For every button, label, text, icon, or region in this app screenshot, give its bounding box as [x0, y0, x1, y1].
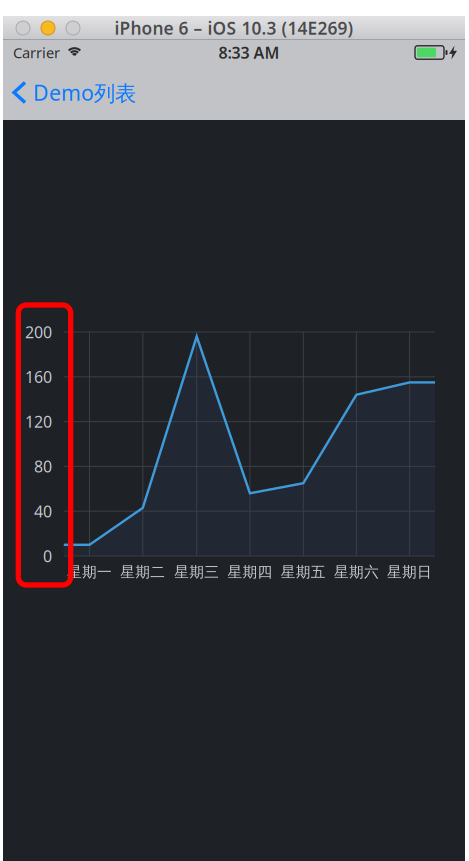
staticText: iPhone 6 – iOS 10.3 (14E269) [114, 16, 353, 39]
staticText: 40 [34, 501, 52, 522]
staticText: 星期日 [387, 563, 432, 581]
staticText: 8:33 AM [218, 42, 279, 63]
staticText: 星期六 [334, 563, 379, 581]
staticText: 120 [25, 411, 52, 432]
staticText: 200 [25, 321, 52, 343]
staticText: Carrier [13, 43, 60, 62]
staticText: 80 [34, 456, 52, 477]
staticText: 星期四 [227, 563, 272, 581]
staticText: 星期一 [67, 563, 112, 581]
staticText: Demo列表 [33, 78, 136, 107]
button[interactable]: Demo列表 [3, 65, 465, 120]
staticText: 星期三 [174, 563, 219, 581]
staticText: 星期五 [281, 563, 326, 581]
staticText: 星期二 [120, 563, 165, 581]
staticText: 0 [43, 545, 52, 567]
staticText: 160 [25, 366, 52, 387]
